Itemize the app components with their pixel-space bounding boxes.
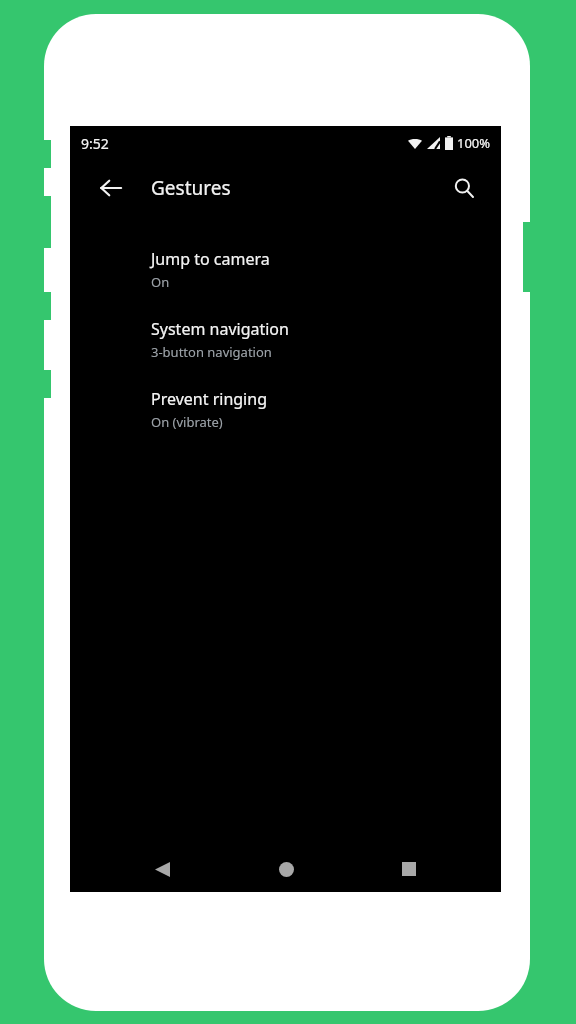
button[interactable]: Recent apps	[387, 847, 431, 891]
staticText: 3-button navigation	[151, 343, 272, 361]
staticText: System navigation	[151, 318, 289, 340]
button[interactable]: Prevent ringing	[70, 374, 501, 444]
button[interactable]: System navigation	[70, 304, 501, 374]
staticText: Prevent ringing	[151, 388, 267, 410]
button[interactable]: Search	[441, 165, 487, 211]
button[interactable]: Jump to camera	[70, 234, 501, 304]
staticText: Gestures	[151, 175, 231, 201]
staticText: 9:52	[81, 134, 109, 153]
staticText: On	[151, 273, 170, 291]
staticText: 100%	[457, 134, 491, 152]
button[interactable]: Home	[264, 847, 308, 891]
button[interactable]: Back	[88, 165, 134, 211]
staticText: Jump to camera	[151, 248, 270, 270]
staticText: On (vibrate)	[151, 413, 223, 431]
button[interactable]: Back	[140, 847, 184, 891]
